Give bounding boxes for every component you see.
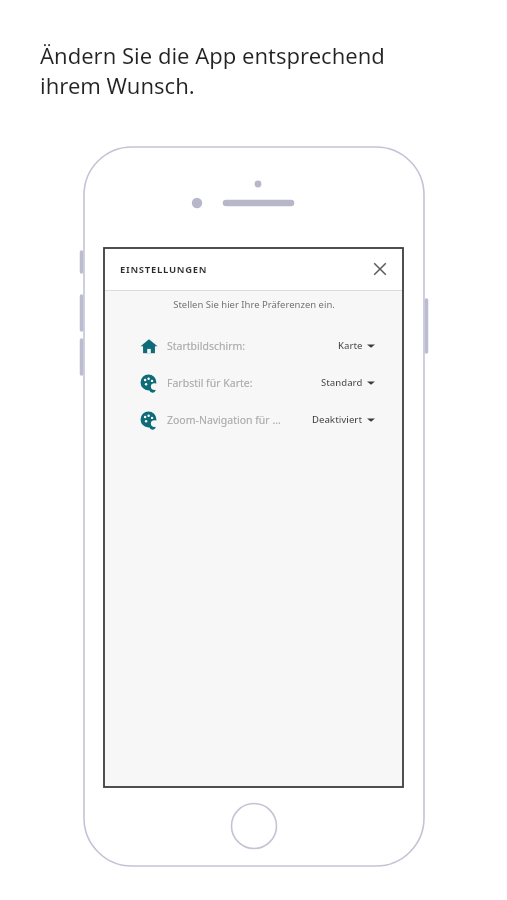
staticText: Deaktiviert xyxy=(312,413,363,426)
staticText: EINSTELLUNGEN xyxy=(120,263,208,276)
staticText: Stellen Sie hier Ihre Präferenzen ein. xyxy=(173,298,335,311)
staticText: Karte xyxy=(338,339,363,352)
button[interactable]: Zoom-Navigation für ... xyxy=(104,401,403,438)
staticText: Startbildschirm: xyxy=(167,339,338,353)
staticText: Ändern Sie die App entsprechend xyxy=(40,40,385,70)
button[interactable]: Schließen xyxy=(369,258,391,280)
button[interactable]: Startbildschirm: xyxy=(104,327,403,364)
staticText: Zoom-Navigation für ... xyxy=(167,413,312,427)
button[interactable]: Farbstil für Karte: xyxy=(104,364,403,401)
staticText: Standard xyxy=(321,376,363,389)
staticText: Farbstil für Karte: xyxy=(167,376,321,390)
staticText: ihrem Wunsch. xyxy=(40,70,195,100)
